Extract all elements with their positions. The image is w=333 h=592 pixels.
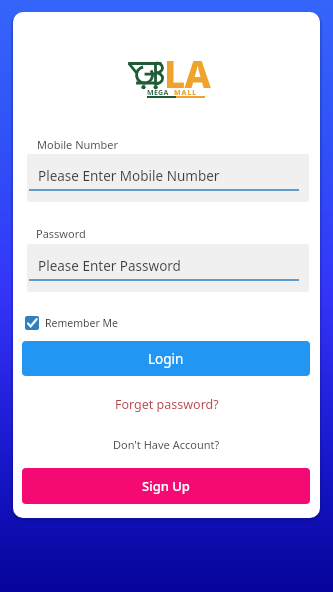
staticText: Forget password? bbox=[115, 396, 219, 413]
staticText: Remember Me bbox=[45, 316, 118, 330]
staticText: Sign Up bbox=[142, 477, 190, 495]
staticText: MALL bbox=[174, 88, 198, 98]
button[interactable]: Please Enter Password bbox=[27, 244, 309, 292]
staticText: Please Enter Password bbox=[38, 257, 181, 275]
button[interactable]: Sign Up bbox=[22, 468, 310, 504]
button[interactable]: Please Enter Mobile Number bbox=[27, 154, 309, 202]
button[interactable]: Forget password? bbox=[13, 396, 320, 413]
staticText: Don't Have Account? bbox=[113, 437, 220, 452]
button[interactable]: Login bbox=[22, 341, 310, 376]
staticText: Please Enter Mobile Number bbox=[38, 167, 220, 185]
button[interactable]: Remember Me bbox=[25, 316, 118, 330]
staticText: Login bbox=[148, 350, 184, 368]
staticText: Mobile Number bbox=[37, 137, 119, 152]
staticText: MEGA bbox=[147, 88, 169, 98]
staticText: LA bbox=[164, 48, 211, 98]
staticText: Password bbox=[36, 226, 86, 241]
